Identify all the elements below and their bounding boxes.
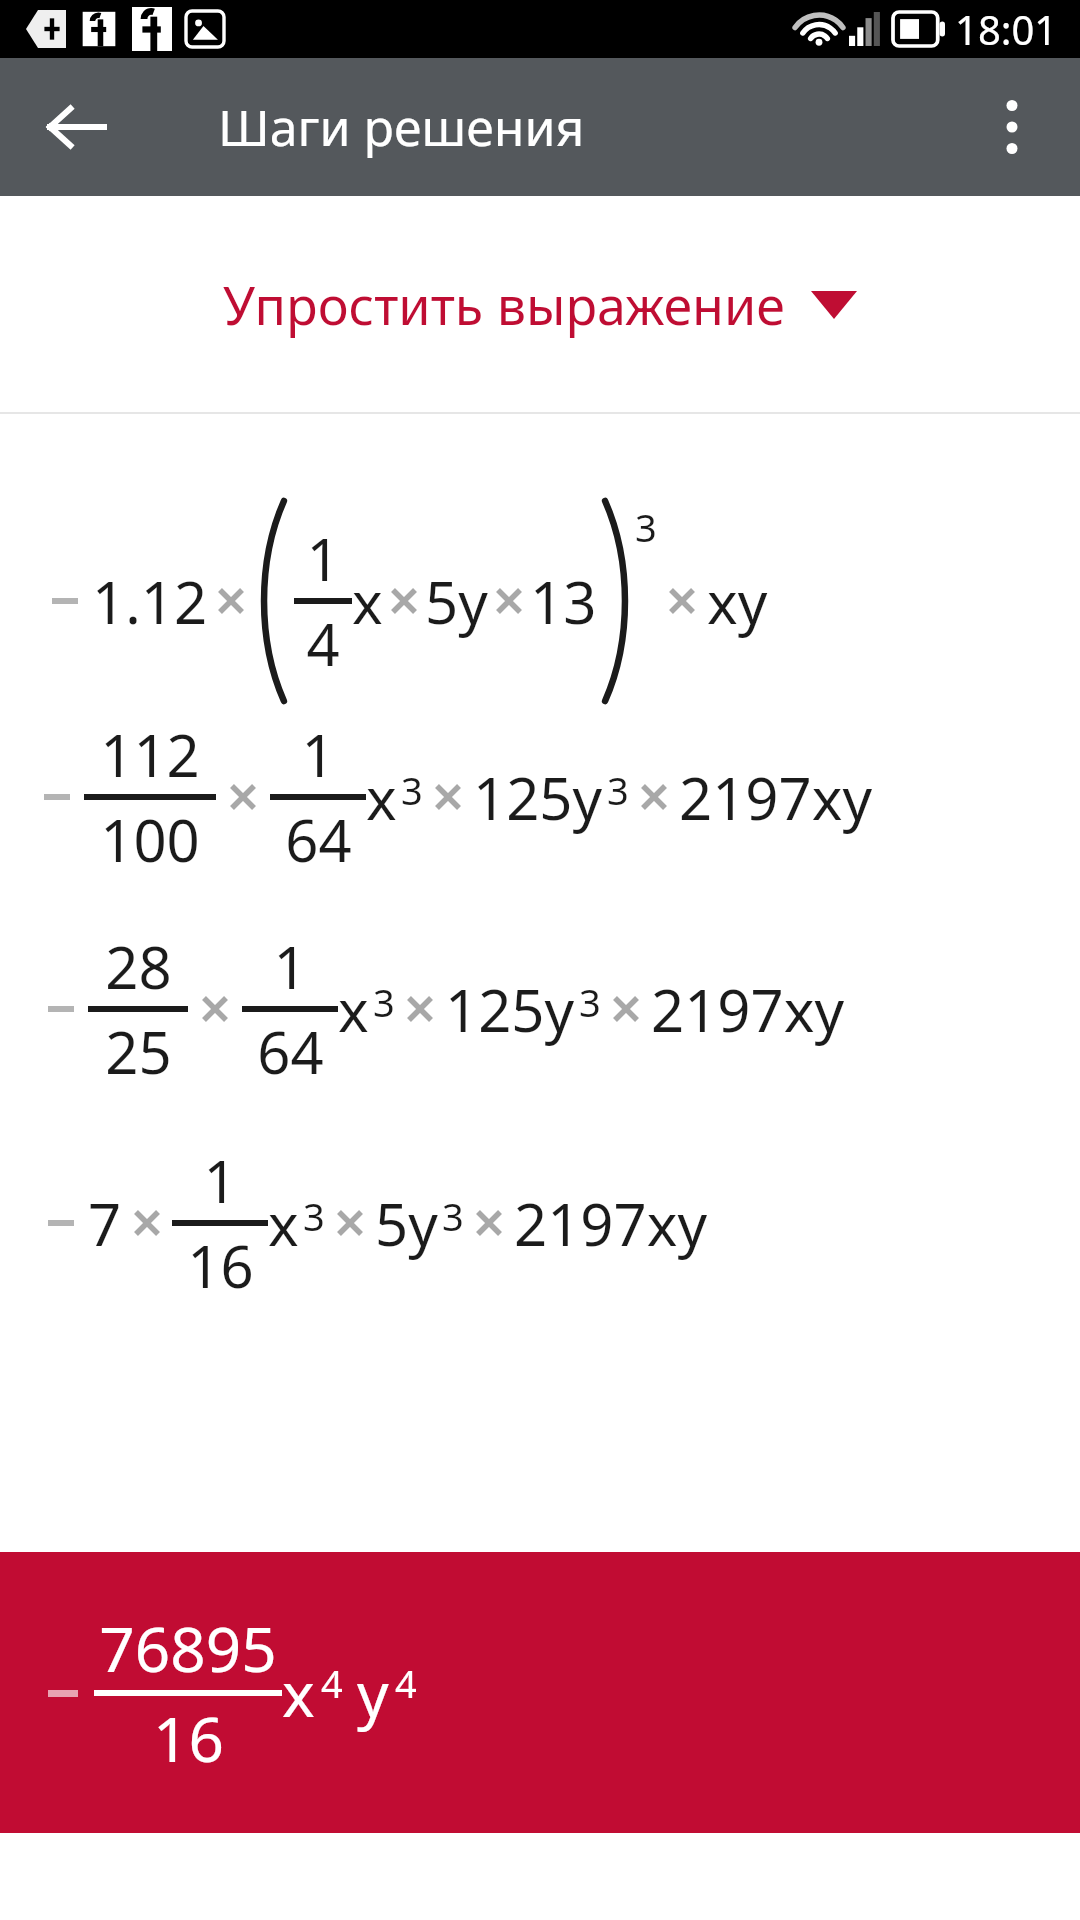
staticText: 4 [395,1657,417,1709]
staticText: 1 [273,927,307,1006]
staticText: 3 [401,764,423,816]
staticText: 2197xy [651,970,844,1049]
staticText: x [338,970,369,1049]
staticText: 3 [442,1190,464,1242]
staticText: 5y [425,562,488,641]
staticText: 3 [303,1190,325,1242]
staticText: x [366,758,397,837]
staticText: x [282,1651,315,1735]
staticText: 76895 [99,1606,277,1690]
staticText: 64 [285,800,352,879]
staticText: x [268,1184,299,1263]
staticText: y [357,1651,389,1735]
staticText: 3 [579,976,601,1028]
staticText: 18:01 [955,2,1058,56]
button[interactable]: 76895 [0,1552,1080,1833]
staticText: 28 [105,927,172,1006]
staticText: 7 [88,1184,122,1263]
staticText: 1 [306,519,340,598]
staticText: 2197xy [679,758,872,837]
staticText: 112 [100,715,200,794]
staticText: 100 [100,800,200,879]
staticText: 25 [105,1012,172,1091]
button[interactable]: Ещё [964,79,1060,175]
staticText: 1 [203,1141,237,1220]
staticText: 3 [635,501,657,553]
staticText: 3 [607,764,629,816]
staticText: Упростить выражение [223,269,785,340]
staticText: xy [707,562,768,641]
staticText: Шаги решения [218,93,585,161]
staticText: 2197xy [514,1184,707,1263]
staticText: x [352,562,383,641]
staticText: 1 [301,715,335,794]
staticText: 4 [306,604,340,683]
staticText: 16 [187,1226,254,1305]
staticText: 5y [375,1184,438,1263]
staticText: 16 [153,1696,224,1780]
button[interactable]: Назад [28,79,124,175]
staticText: 125y [473,758,603,837]
button[interactable]: Упростить выражение [0,196,1080,412]
staticText: 13 [530,562,597,641]
staticText: 1.12 [92,562,208,641]
staticText: 3 [373,976,395,1028]
staticText: 4 [321,1657,343,1709]
staticText: 64 [257,1012,324,1091]
staticText: 125y [445,970,575,1049]
